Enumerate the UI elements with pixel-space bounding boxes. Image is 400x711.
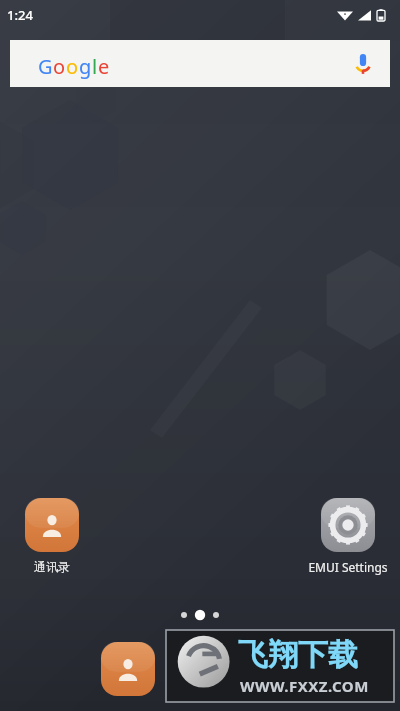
staticText: 通讯录 <box>34 559 70 574</box>
staticText: G <box>38 53 53 80</box>
button[interactable]: Contacts <box>25 498 79 552</box>
button[interactable]: Voice search <box>350 51 376 77</box>
staticText: e <box>98 53 110 80</box>
button[interactable]: Contacts <box>12 498 92 574</box>
staticText: l <box>92 53 98 80</box>
staticText: 1:24 <box>7 6 33 24</box>
button[interactable]: EMUI Settings <box>302 498 394 575</box>
staticText: 飞翔下载 <box>238 636 358 674</box>
staticText: o <box>66 53 79 80</box>
button[interactable]: G <box>10 40 390 87</box>
staticText: EMUI Settings <box>308 559 388 575</box>
staticText: g <box>79 53 92 80</box>
staticText: o <box>53 53 66 80</box>
button[interactable]: EMUI Settings <box>321 498 375 552</box>
staticText: WWW.FXXZ.COM <box>240 676 369 696</box>
button[interactable]: Contacts <box>101 642 155 696</box>
